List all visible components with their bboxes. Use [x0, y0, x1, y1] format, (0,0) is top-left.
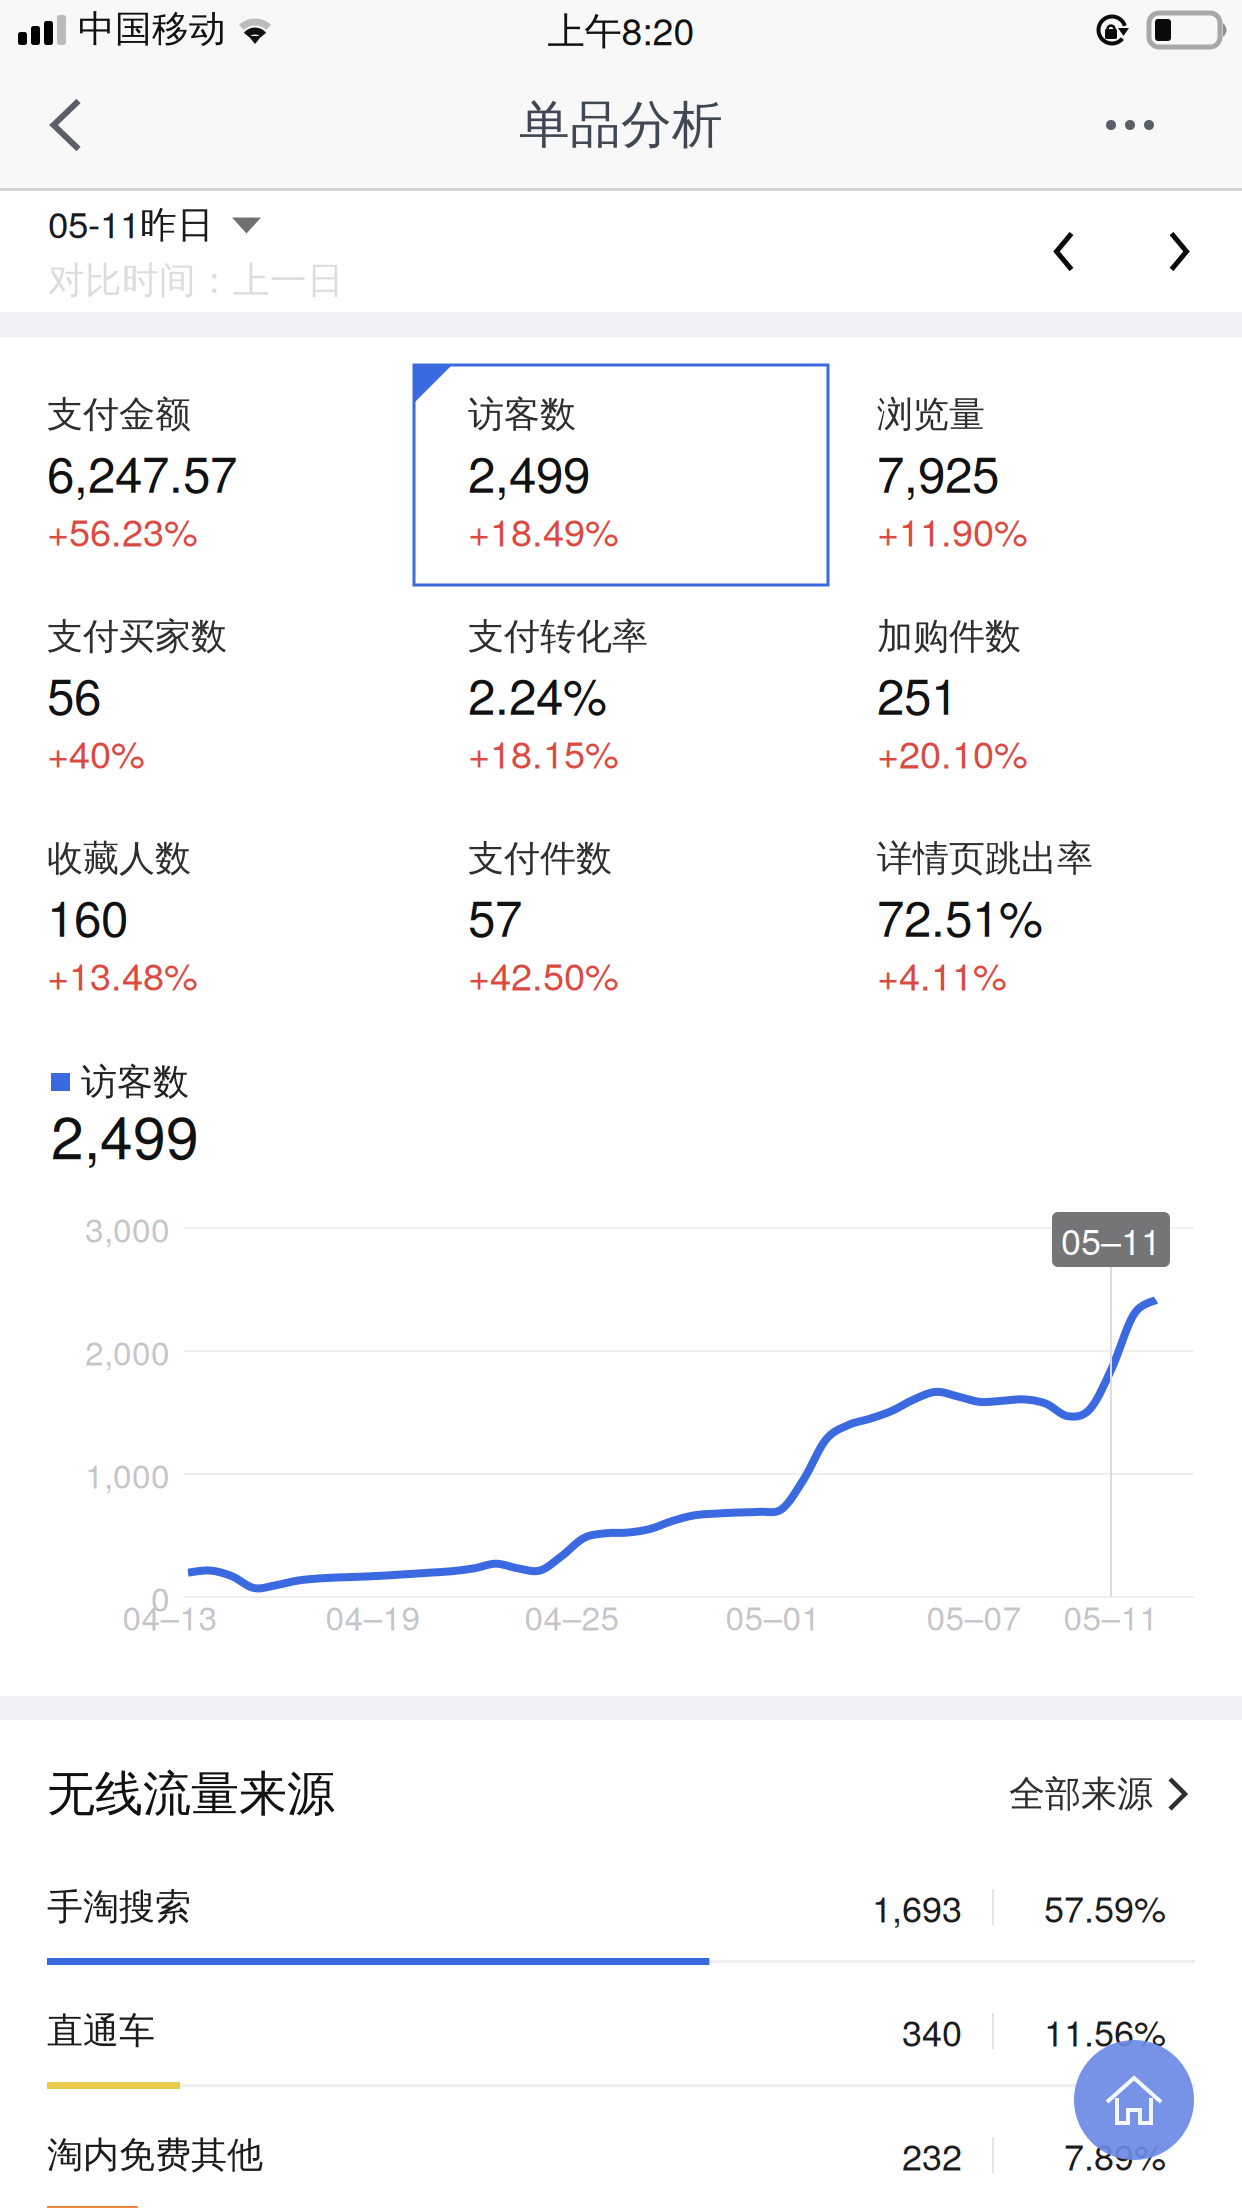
staticText: +13.48% [47, 947, 198, 1001]
staticText: 11.56% [1044, 2005, 1166, 2057]
staticText: 7.89% [1064, 2129, 1166, 2181]
staticText: 中国移动 [78, 6, 226, 52]
staticText: +56.23% [47, 503, 198, 557]
staticText: 加购件数 [877, 614, 1021, 659]
staticText: 05–07 [926, 1592, 1021, 1640]
staticText: 04–25 [524, 1592, 619, 1640]
staticText: 3,000 [85, 1204, 170, 1252]
staticText: 浏览量 [877, 392, 985, 437]
button[interactable]: 支付转化率 [468, 615, 877, 837]
button[interactable]: 浏览量 [877, 393, 1242, 615]
button[interactable]: 05-11昨日 [48, 193, 344, 309]
button[interactable]: 访客数 [468, 393, 877, 615]
staticText: 1,000 [85, 1450, 170, 1498]
staticText: 160 [47, 880, 128, 951]
staticText: 全部来源 [1009, 1771, 1153, 1817]
staticText: 单品分析 [519, 93, 723, 157]
staticText: 04–13 [122, 1592, 217, 1640]
staticText: 04–19 [325, 1592, 420, 1640]
staticText: 2.24% [468, 658, 607, 729]
staticText: 上午8:20 [547, 2, 694, 56]
staticText: 57 [468, 880, 522, 951]
staticText: 支付买家数 [47, 614, 227, 659]
staticText: 251 [877, 658, 958, 729]
staticText: 0 [151, 1573, 170, 1621]
staticText: 无线流量来源 [47, 1764, 335, 1824]
staticText: 05–01 [725, 1592, 820, 1640]
button[interactable]: 淘内免费其他 [47, 2122, 1195, 2208]
staticText: +18.15% [468, 725, 619, 779]
staticText: 72.51% [877, 880, 1043, 951]
staticText: 05–11 [1061, 1214, 1161, 1265]
staticText: 支付金额 [47, 392, 191, 437]
button[interactable]: 支付件数 [468, 837, 877, 1059]
staticText: 2,499 [51, 1092, 199, 1176]
staticText: 对比时间：上一日 [48, 257, 344, 304]
button[interactable]: 加购件数 [877, 615, 1242, 837]
button[interactable]: 支付买家数 [47, 615, 468, 837]
button[interactable]: 支付金额 [47, 393, 468, 615]
button[interactable]: 详情页跳出率 [877, 837, 1242, 1059]
staticText: 2,000 [85, 1327, 170, 1375]
staticText: 淘内免费其他 [47, 2132, 263, 2178]
staticText: 收藏人数 [47, 836, 191, 881]
staticText: 支付件数 [468, 836, 612, 881]
staticText: 支付转化率 [468, 614, 648, 659]
staticText: 56 [47, 658, 101, 729]
staticText: 直通车 [47, 2008, 155, 2054]
staticText: 6,247.57 [47, 436, 237, 507]
button[interactable]: Home [1074, 2040, 1194, 2160]
staticText: 232 [902, 2129, 962, 2181]
button[interactable]: Next day [1126, 193, 1232, 309]
staticText: +4.11% [877, 947, 1007, 1001]
button[interactable]: 全部来源 [999, 1751, 1195, 1837]
staticText: +11.90% [877, 503, 1028, 557]
button[interactable]: More options [1074, 62, 1186, 188]
staticText: 05-11昨日 [48, 196, 214, 249]
button[interactable]: 直通车 [47, 1998, 1195, 2122]
staticText: +40% [47, 725, 145, 779]
button[interactable]: 收藏人数 [47, 837, 468, 1059]
button[interactable]: 手淘搜索 [47, 1874, 1195, 1998]
staticText: +20.10% [877, 725, 1028, 779]
staticText: +42.50% [468, 947, 619, 1001]
staticText: 57.59% [1044, 1881, 1166, 1933]
staticText: 手淘搜索 [47, 1884, 191, 1930]
staticText: 2,499 [468, 436, 590, 507]
staticText: 详情页跳出率 [877, 836, 1093, 881]
staticText: 7,925 [877, 436, 999, 507]
staticText: +18.49% [468, 503, 619, 557]
staticText: 05–11 [1063, 1592, 1158, 1640]
staticText: 访客数 [81, 1059, 189, 1105]
staticText: 340 [902, 2005, 962, 2057]
button[interactable]: Previous day [1002, 193, 1126, 309]
button[interactable]: Back [14, 62, 118, 188]
staticText: 1,693 [872, 1881, 962, 1933]
staticText: 访客数 [468, 392, 576, 437]
